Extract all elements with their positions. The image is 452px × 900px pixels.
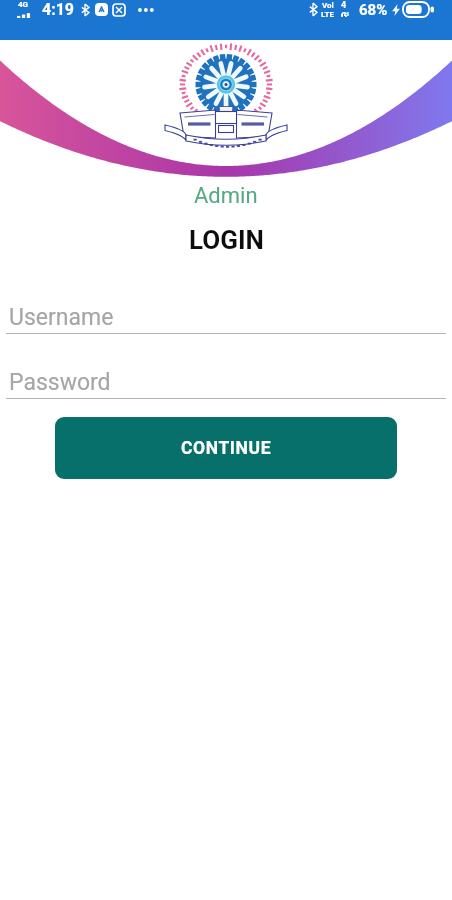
staticText: Password [9, 369, 111, 396]
staticText: Vol [322, 1, 334, 10]
staticText: CONTINUE [181, 438, 272, 459]
staticText: Admin [194, 183, 258, 209]
button[interactable]: Password [0, 343, 452, 404]
staticText: 4:19 [42, 0, 75, 19]
staticText: Username [9, 304, 114, 331]
staticText: 4G [18, 0, 29, 9]
button[interactable]: Username [0, 278, 452, 339]
staticText: 68% [359, 1, 388, 19]
staticText: LOGIN [189, 225, 264, 255]
staticText: 4G [341, 0, 351, 17]
button[interactable]: CONTINUE [55, 417, 397, 479]
staticText: LTE [321, 10, 334, 19]
